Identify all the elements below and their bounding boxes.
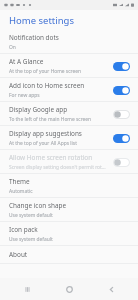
staticText: To the left of the main Home screen xyxy=(9,116,92,123)
staticText: At A Glance xyxy=(9,57,44,66)
button[interactable]: At A Glance xyxy=(0,54,138,77)
button[interactable]: Toggle setting xyxy=(111,60,131,72)
staticText: At the top of your All Apps list xyxy=(9,140,77,147)
staticText: Notification dots xyxy=(9,33,59,42)
staticText: Icon pack xyxy=(9,225,38,234)
staticText: On xyxy=(9,44,16,51)
staticText: Use system default xyxy=(9,236,53,243)
staticText: Home settings xyxy=(9,14,74,27)
staticText: For new apps xyxy=(9,92,40,99)
staticText: Add icon to Home screen xyxy=(9,81,85,90)
button[interactable]: Display app suggestions xyxy=(0,126,138,149)
staticText: Automatic xyxy=(9,188,33,195)
staticText: Theme xyxy=(9,177,30,186)
button[interactable]: Theme xyxy=(0,174,138,197)
button[interactable]: Notification dots xyxy=(0,30,138,53)
button[interactable]: Allow Home screen rotation xyxy=(0,150,138,173)
staticText: Display app suggestions xyxy=(9,129,82,138)
button[interactable]: Toggle setting xyxy=(111,108,131,120)
button[interactable]: Home xyxy=(54,278,84,300)
button[interactable]: Back xyxy=(96,278,126,300)
button[interactable]: About xyxy=(0,246,138,263)
button[interactable]: Toggle setting xyxy=(111,156,131,168)
staticText: Change icon shape xyxy=(9,201,67,210)
staticText: At the top of your Home screen xyxy=(9,68,82,75)
button[interactable]: Display Google app xyxy=(0,102,138,125)
button[interactable]: Add icon to Home screen xyxy=(0,78,138,101)
button[interactable]: Recent apps xyxy=(12,278,42,300)
button[interactable]: Change icon shape xyxy=(0,198,138,221)
staticText: Screen display setting doesn't permit ro… xyxy=(9,164,107,171)
button[interactable]: Toggle setting xyxy=(111,132,131,144)
staticText: About xyxy=(9,250,28,259)
button[interactable]: Toggle setting xyxy=(111,84,131,96)
staticText: Use system default xyxy=(9,212,53,219)
staticText: Allow Home screen rotation xyxy=(9,153,93,162)
staticText: Display Google app xyxy=(9,105,68,114)
button[interactable]: Icon pack xyxy=(0,222,138,245)
